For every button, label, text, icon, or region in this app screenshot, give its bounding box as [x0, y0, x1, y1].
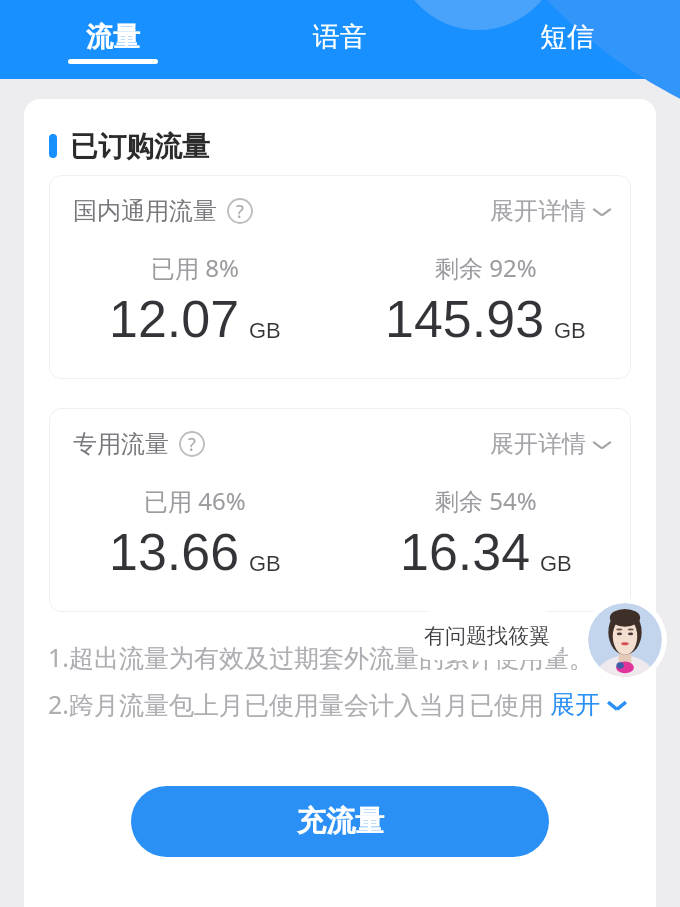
staticText: 145.93: [385, 290, 545, 348]
staticText: 展开详情: [490, 429, 586, 459]
button[interactable]: 有问题找筱翼: [411, 611, 563, 660]
staticText: 13.66: [109, 523, 240, 581]
staticText: GB: [249, 551, 281, 576]
staticText: 展开详情: [490, 196, 586, 226]
staticText: 已用 46%: [144, 484, 246, 517]
staticText: 国内通用流量: [73, 196, 217, 226]
staticText: ?: [236, 199, 244, 224]
staticText: ?: [188, 432, 196, 457]
button[interactable]: Help: [179, 431, 205, 457]
button[interactable]: 展开详情: [490, 429, 613, 459]
button[interactable]: 充流量: [131, 786, 549, 857]
staticText: 1.超出流量为有效及过期套外流量的累计使用量。: [48, 640, 595, 674]
button[interactable]: 短信: [453, 0, 680, 79]
staticText: 语音: [313, 20, 367, 54]
staticText: 12.07: [109, 290, 240, 348]
button[interactable]: 展开详情: [490, 196, 613, 226]
staticText: 专用流量: [73, 429, 169, 459]
button[interactable]: Help: [227, 198, 253, 224]
staticText: 充流量: [297, 803, 384, 840]
staticText: 16.34: [400, 523, 531, 581]
staticText: GB: [540, 551, 572, 576]
button[interactable]: Customer service assistant: [583, 598, 667, 682]
staticText: 2.跨月流量包上月已使用量会计入当月已使用: [48, 687, 545, 721]
staticText: 剩余 54%: [435, 484, 537, 517]
button[interactable]: 流量: [0, 0, 226, 79]
staticText: 剩余 92%: [435, 251, 537, 284]
button[interactable]: 语音: [226, 0, 453, 79]
staticText: GB: [249, 318, 281, 343]
staticText: GB: [554, 318, 586, 343]
button[interactable]: 展开: [550, 689, 629, 720]
staticText: 有问题找筱翼: [424, 623, 550, 649]
staticText: 展开: [550, 689, 600, 720]
staticText: 已订购流量: [70, 129, 210, 163]
staticText: 已用 8%: [151, 251, 239, 284]
staticText: 短信: [540, 20, 594, 54]
staticText: 流量: [86, 20, 140, 54]
